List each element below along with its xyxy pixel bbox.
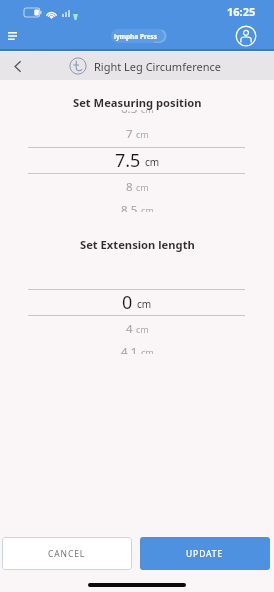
button[interactable]: 0	[0, 290, 274, 314]
staticText: Right Leg Circumference	[94, 59, 221, 74]
button[interactable]: Menu	[2, 26, 22, 46]
button[interactable]: 7.5	[0, 148, 274, 172]
staticText: 8	[126, 179, 133, 195]
staticText: cm	[145, 155, 160, 169]
button[interactable]: CANCEL	[2, 537, 132, 570]
staticText: Set Extension length	[80, 237, 195, 252]
button[interactable]: Account	[235, 25, 257, 47]
staticText: 0	[122, 290, 133, 314]
staticText: CANCEL	[48, 548, 86, 560]
button[interactable]: UPDATE	[140, 537, 270, 570]
staticText: Set Measuring position	[73, 95, 202, 110]
staticText: cm	[141, 110, 154, 115]
staticText: cm	[141, 204, 154, 212]
staticText: 16:25	[227, 4, 256, 19]
staticText: UPDATE	[186, 548, 224, 560]
staticText: 4.1	[121, 344, 138, 354]
staticText: 8.5	[121, 202, 138, 212]
staticText: 7	[126, 126, 133, 142]
staticText: 7.5	[115, 148, 141, 172]
staticText: 6.5	[121, 110, 138, 117]
staticText: cm	[136, 128, 149, 140]
staticText: cm	[136, 323, 149, 335]
staticText: cm	[136, 181, 149, 193]
staticText: cm	[137, 297, 152, 311]
staticText: lympha Press	[114, 32, 158, 41]
button[interactable]: Back	[5, 54, 29, 78]
staticText: cm	[141, 346, 154, 354]
staticText: 4	[126, 321, 133, 337]
